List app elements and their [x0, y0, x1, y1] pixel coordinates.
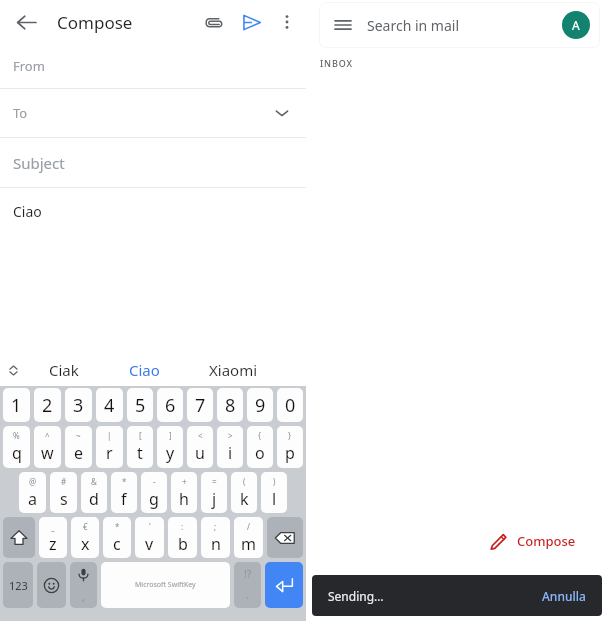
button[interactable]: €: [71, 517, 99, 558]
staticText: A: [572, 17, 580, 33]
button[interactable]: *: [111, 472, 137, 513]
staticText: 2: [42, 393, 53, 418]
button[interactable]: @: [19, 472, 46, 513]
button[interactable]: Enter: [265, 562, 303, 608]
staticText: =: [212, 476, 217, 487]
staticText: h: [179, 488, 189, 510]
button[interactable]: -: [141, 472, 167, 513]
button[interactable]: 4: [96, 388, 123, 422]
staticText: 7: [195, 393, 206, 418]
button[interactable]: 3: [65, 388, 92, 422]
staticText: >: [228, 430, 233, 441]
button[interactable]: Space: [101, 562, 230, 608]
button[interactable]: <: [187, 426, 213, 468]
button[interactable]: Ciao: [108, 354, 180, 386]
button[interactable]: ': [135, 517, 164, 558]
staticText: .: [246, 587, 249, 602]
button[interactable]: Expand recipients: [262, 93, 302, 133]
button[interactable]: Expand suggestions: [0, 357, 26, 383]
button[interactable]: ]: [157, 426, 183, 468]
button[interactable]: From: [0, 44, 306, 88]
button[interactable]: Backspace: [267, 517, 303, 558]
button[interactable]: :: [168, 517, 197, 558]
button[interactable]: To: [0, 89, 306, 137]
button[interactable]: Shift: [3, 517, 35, 558]
button[interactable]: 9: [247, 388, 273, 422]
staticText: Subject: [13, 153, 65, 173]
staticText: n: [211, 533, 221, 555]
staticText: s: [60, 488, 68, 510]
staticText: e: [74, 442, 84, 464]
button[interactable]: 2: [34, 388, 61, 422]
button[interactable]: ^: [34, 426, 61, 468]
button[interactable]: Compose: [471, 519, 594, 563]
staticText: 5: [135, 393, 146, 418]
button[interactable]: Xiaomi: [188, 354, 278, 386]
button[interactable]: Emoji: [37, 562, 66, 608]
button[interactable]: 123: [3, 562, 33, 608]
button[interactable]: %: [3, 426, 30, 468]
button[interactable]: More options: [270, 5, 304, 39]
staticText: ~: [76, 430, 81, 441]
staticText: *: [122, 476, 127, 487]
button[interactable]: ;: [201, 517, 230, 558]
staticText: 3: [73, 393, 84, 418]
button[interactable]: ~: [65, 426, 92, 468]
button[interactable]: 7: [187, 388, 213, 422]
button[interactable]: Account: [562, 11, 590, 39]
staticText: 9: [255, 393, 266, 418]
button[interactable]: =: [201, 472, 227, 513]
button[interactable]: 1: [3, 388, 30, 422]
staticText: a: [28, 488, 37, 510]
button[interactable]: >: [217, 426, 243, 468]
staticText: w: [41, 442, 54, 464]
button[interactable]: _: [39, 517, 67, 558]
staticText: k: [240, 488, 249, 510]
button[interactable]: Back: [6, 2, 46, 42]
staticText: &: [91, 476, 97, 487]
button[interactable]: Send: [232, 3, 270, 41]
button[interactable]: Subject: [0, 138, 306, 187]
staticText: q: [12, 442, 22, 464]
button[interactable]: [: [127, 426, 153, 468]
button[interactable]: }: [277, 426, 303, 468]
button[interactable]: Open navigation drawer: [325, 7, 361, 43]
staticText: z: [49, 533, 57, 555]
staticText: ': [149, 521, 151, 532]
button[interactable]: +: [171, 472, 197, 513]
button[interactable]: #: [50, 472, 77, 513]
staticText: j: [212, 488, 217, 510]
button[interactable]: Ciao: [0, 188, 306, 354]
button[interactable]: !?: [234, 562, 261, 608]
button[interactable]: /: [234, 517, 263, 558]
button[interactable]: 6: [157, 388, 183, 422]
button[interactable]: Ciak: [28, 354, 100, 386]
button[interactable]: Open navigation drawer: [319, 2, 600, 48]
button[interactable]: 5: [127, 388, 153, 422]
staticText: Compose: [517, 532, 576, 550]
button[interactable]: *: [103, 517, 131, 558]
staticText: b: [178, 533, 188, 555]
staticText: 8: [225, 393, 236, 418]
button[interactable]: (: [231, 472, 257, 513]
staticText: l: [272, 488, 277, 510]
staticText: <: [198, 430, 203, 441]
button[interactable]: 8: [217, 388, 243, 422]
button[interactable]: &: [81, 472, 107, 513]
button[interactable]: |: [96, 426, 123, 468]
staticText: m: [241, 533, 256, 555]
staticText: (: [243, 476, 246, 487]
staticText: p: [285, 442, 295, 464]
button[interactable]: Attach file: [194, 3, 232, 41]
button[interactable]: 0: [277, 388, 303, 422]
staticText: |: [107, 430, 112, 441]
button[interactable]: ): [261, 472, 287, 513]
button[interactable]: Annulla: [534, 582, 594, 610]
button[interactable]: {: [247, 426, 273, 468]
staticText: Ciao: [13, 202, 42, 221]
staticText: ): [273, 476, 276, 487]
staticText: Ciak: [49, 360, 79, 380]
staticText: u: [195, 442, 205, 464]
button[interactable]: Voice input: [70, 562, 97, 608]
staticText: From: [13, 57, 45, 75]
